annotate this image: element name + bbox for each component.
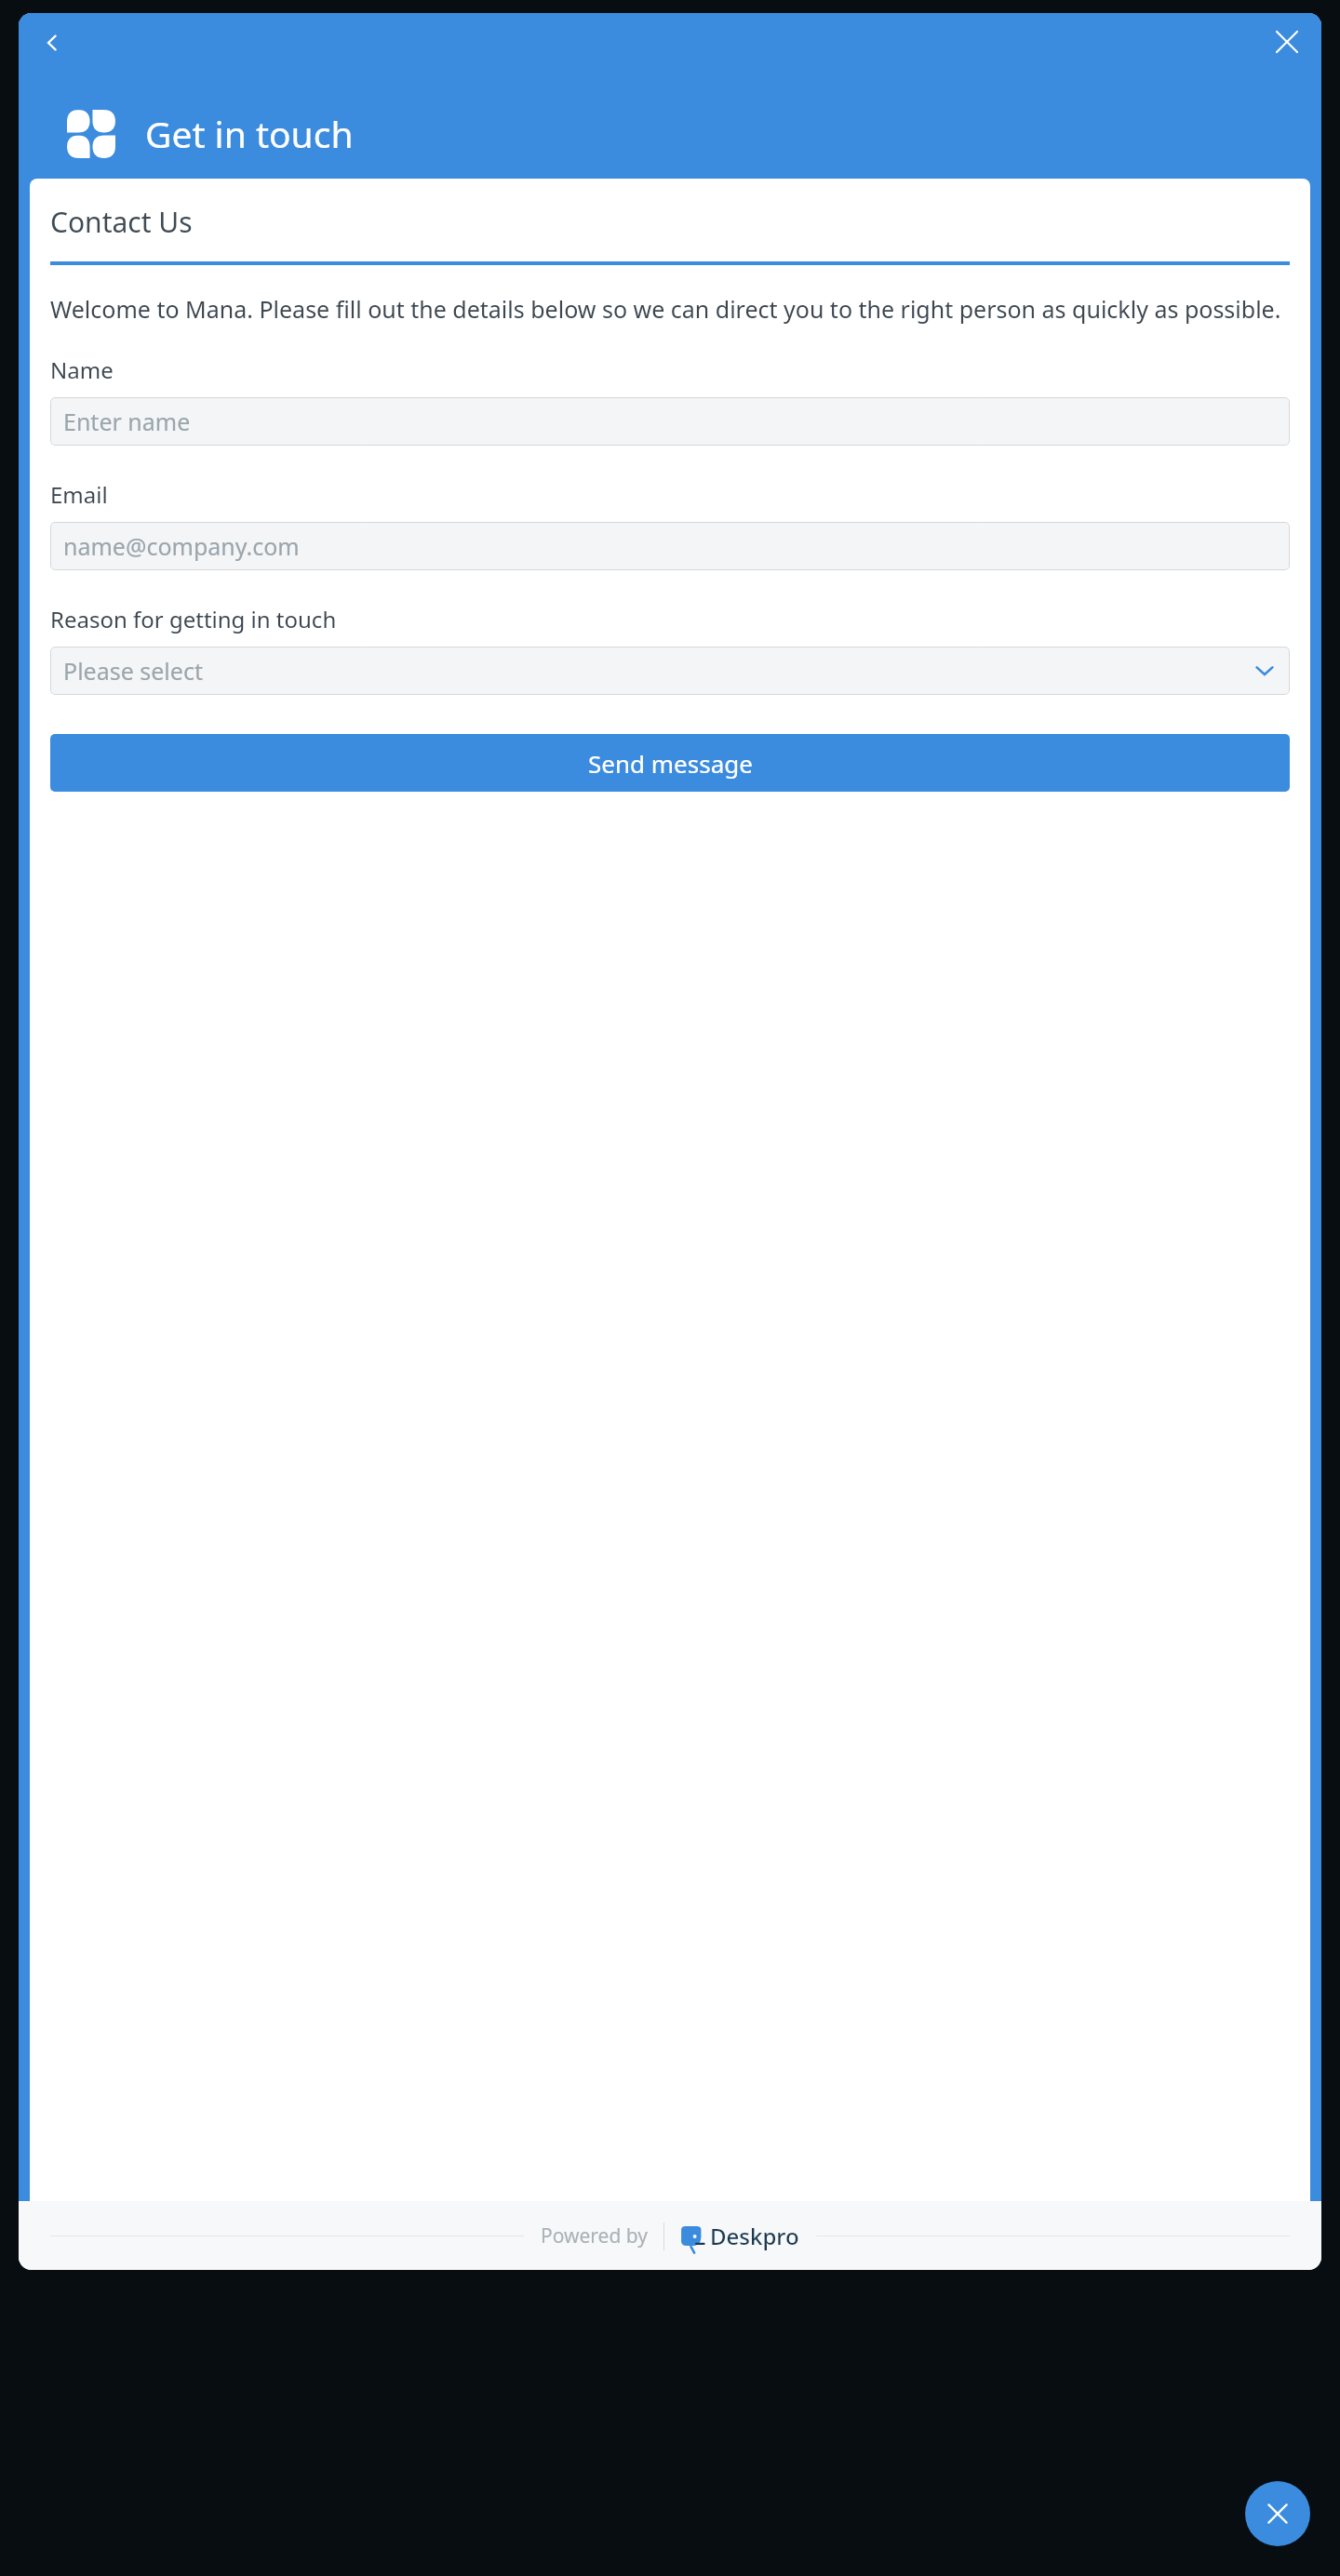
staticText: name@company.com: [63, 530, 300, 562]
button[interactable]: name@company.com: [50, 522, 1290, 570]
staticText: Please select: [63, 655, 203, 687]
button[interactable]: Close: [1266, 20, 1308, 63]
button[interactable]: Please select: [50, 647, 1290, 695]
staticText: Name: [50, 354, 114, 385]
staticText: Powered by: [541, 2222, 649, 2249]
staticText: Get in touch: [145, 109, 354, 158]
staticText: Send message: [588, 747, 753, 780]
button[interactable]: Enter name: [50, 397, 1290, 446]
button[interactable]: Send message: [50, 734, 1290, 792]
button[interactable]: Close chat: [1245, 2481, 1310, 2546]
staticText: Email: [50, 479, 108, 510]
staticText: Reason for getting in touch: [50, 604, 337, 634]
staticText: Enter name: [63, 406, 191, 437]
staticText: Deskpro: [710, 2221, 799, 2251]
staticText: Welcome to Mana. Please fill out the det…: [50, 293, 1281, 325]
button[interactable]: Back: [32, 22, 73, 63]
staticText: Contact Us: [50, 203, 193, 241]
